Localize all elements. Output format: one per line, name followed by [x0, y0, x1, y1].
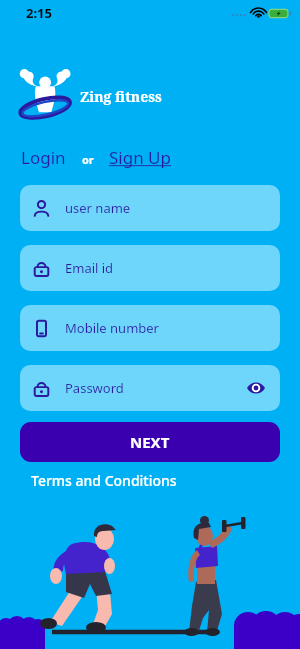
button[interactable]: NEXT	[20, 422, 280, 462]
staticText: Password	[65, 379, 124, 397]
staticText: or	[82, 152, 94, 167]
button[interactable]: Login	[21, 146, 66, 169]
staticText: NEXT	[130, 432, 170, 452]
staticText: user name	[65, 199, 131, 217]
button[interactable]: Show password	[245, 377, 267, 399]
button[interactable]: Sign Up	[109, 146, 171, 169]
button[interactable]: Mobile number	[20, 305, 280, 351]
button[interactable]: Email id	[20, 245, 280, 291]
button[interactable]: user name	[20, 185, 280, 231]
button[interactable]: Terms and Conditions	[31, 471, 177, 490]
staticText: Mobile number	[65, 319, 159, 337]
staticText: Zing fitness	[80, 87, 162, 106]
staticText: 2:15	[26, 4, 52, 22]
button[interactable]: Password	[20, 365, 280, 411]
staticText: Email id	[65, 259, 114, 277]
